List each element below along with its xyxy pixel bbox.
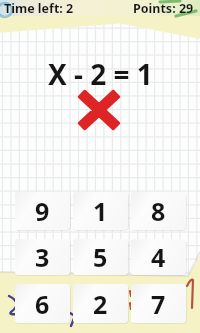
- staticText: 1: [93, 194, 108, 228]
- button[interactable]: 4: [131, 239, 186, 275]
- button[interactable]: 1: [73, 192, 128, 230]
- button[interactable]: 2: [73, 284, 128, 323]
- other: Wrong answer: [79, 91, 119, 129]
- staticText: 3: [35, 240, 50, 274]
- button[interactable]: 9: [15, 192, 70, 230]
- staticText: 8: [151, 194, 166, 228]
- staticText: X - 2 = 1: [48, 55, 153, 89]
- staticText: 2: [93, 287, 108, 321]
- staticText: 5: [93, 240, 108, 274]
- staticText: Time left: 2: [4, 0, 74, 16]
- button[interactable]: 6: [15, 284, 70, 323]
- staticText: 4: [151, 240, 166, 274]
- staticText: 6: [35, 287, 50, 321]
- staticText: Points: 29: [133, 0, 194, 16]
- button[interactable]: 3: [15, 239, 70, 275]
- button[interactable]: 7: [131, 284, 186, 323]
- staticText: 9: [35, 194, 50, 228]
- staticText: 7: [151, 287, 166, 321]
- button[interactable]: 8: [131, 192, 186, 230]
- button[interactable]: 5: [73, 239, 128, 275]
